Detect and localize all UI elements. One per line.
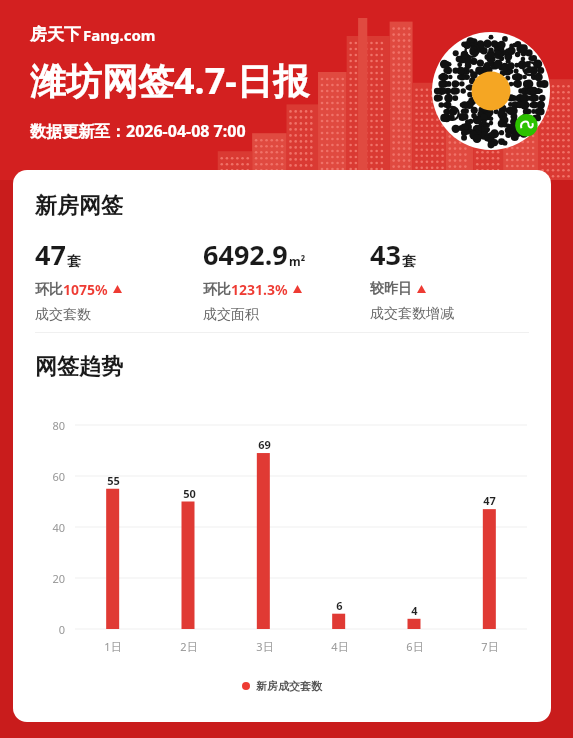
- staticText: 较昨日: [370, 280, 412, 298]
- staticText: 60: [52, 469, 65, 484]
- staticText: 43: [370, 236, 401, 273]
- staticText: 50: [183, 486, 196, 501]
- staticText: 网签趋势: [35, 353, 123, 381]
- staticText: 成交面积: [203, 306, 259, 324]
- staticText: 47: [483, 493, 496, 508]
- staticText: 80: [52, 418, 65, 433]
- staticText: 69: [258, 437, 271, 452]
- staticText: 7日: [481, 639, 499, 654]
- staticText: 4日: [331, 639, 349, 654]
- staticText: 环比: [203, 281, 231, 299]
- button[interactable]: 扫码二维码: [432, 32, 550, 150]
- staticText: 成交套数: [35, 306, 91, 324]
- staticText: 2日: [180, 639, 198, 654]
- staticText: 房天下: [30, 24, 81, 45]
- staticText: 6: [336, 598, 343, 613]
- staticText: 40: [52, 520, 65, 535]
- staticText: 潍坊网签4.7-日报: [30, 56, 309, 105]
- staticText: 套: [67, 253, 81, 271]
- staticText: 1075%: [63, 280, 108, 299]
- button[interactable]: 房天下: [30, 24, 156, 45]
- staticText: 成交套数增减: [370, 305, 454, 323]
- button[interactable]: 新房成交套数: [13, 679, 551, 693]
- staticText: 6492.9: [203, 236, 288, 273]
- staticText: m²: [289, 253, 306, 269]
- staticText: 数据更新至：2026-04-08 7:00: [30, 120, 246, 142]
- staticText: 6日: [406, 639, 424, 654]
- staticText: 1日: [104, 639, 122, 654]
- staticText: 套: [402, 253, 416, 271]
- staticText: 4: [411, 603, 418, 618]
- staticText: 3日: [256, 639, 274, 654]
- staticText: 0: [58, 622, 65, 637]
- staticText: 20: [52, 571, 65, 586]
- staticText: 47: [35, 236, 66, 273]
- staticText: 1231.3%: [231, 280, 288, 299]
- staticText: Fang.com: [83, 25, 156, 45]
- button[interactable]: 6492.9: [203, 236, 306, 324]
- staticText: 55: [107, 473, 120, 488]
- staticText: 新房成交套数: [256, 679, 322, 693]
- button[interactable]: 43: [370, 236, 454, 323]
- staticText: 环比: [35, 281, 63, 299]
- staticText: 新房网签: [35, 192, 123, 220]
- button[interactable]: 47: [35, 236, 123, 324]
